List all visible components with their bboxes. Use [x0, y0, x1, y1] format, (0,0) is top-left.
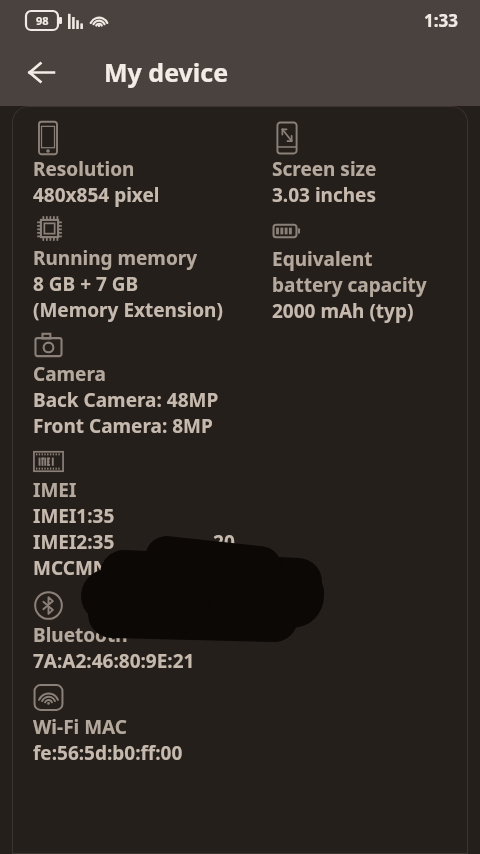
staticText: Wi-Fi MAC	[33, 714, 128, 740]
staticText: 2000 mAh (typ)	[272, 298, 414, 324]
staticText: IMEI	[33, 477, 77, 503]
staticText: IMEI2:35 20	[33, 529, 235, 555]
staticText: Back Camera: 48MP	[33, 387, 219, 413]
staticText: Equivalent	[272, 246, 373, 272]
staticText: 98	[36, 13, 49, 28]
staticText: Bluetooth	[33, 622, 128, 648]
staticText: 7A:A2:46:80:9E:21	[33, 648, 195, 674]
staticText: battery capacity	[272, 272, 427, 298]
staticText: My device	[104, 55, 229, 89]
staticText: 3.03 inches	[272, 182, 376, 208]
staticText: 1:33	[424, 9, 458, 32]
staticText: 480x854 pixel	[33, 182, 160, 208]
staticText: Running memory	[33, 245, 198, 271]
staticText: 8 GB + 7 GB	[33, 271, 139, 297]
staticText: (Memory Extension)	[33, 297, 223, 323]
staticText: Front Camera: 8MP	[33, 413, 213, 439]
button[interactable]: Back	[14, 45, 68, 99]
staticText: Resolution	[33, 156, 135, 182]
staticText: Camera	[33, 361, 106, 387]
staticText: MCCMNC:42533	[33, 555, 181, 581]
staticText: IMEI1:35	[33, 503, 115, 529]
staticText: Screen size	[272, 156, 377, 182]
staticText: fe:56:5d:b0:ff:00	[33, 740, 183, 766]
